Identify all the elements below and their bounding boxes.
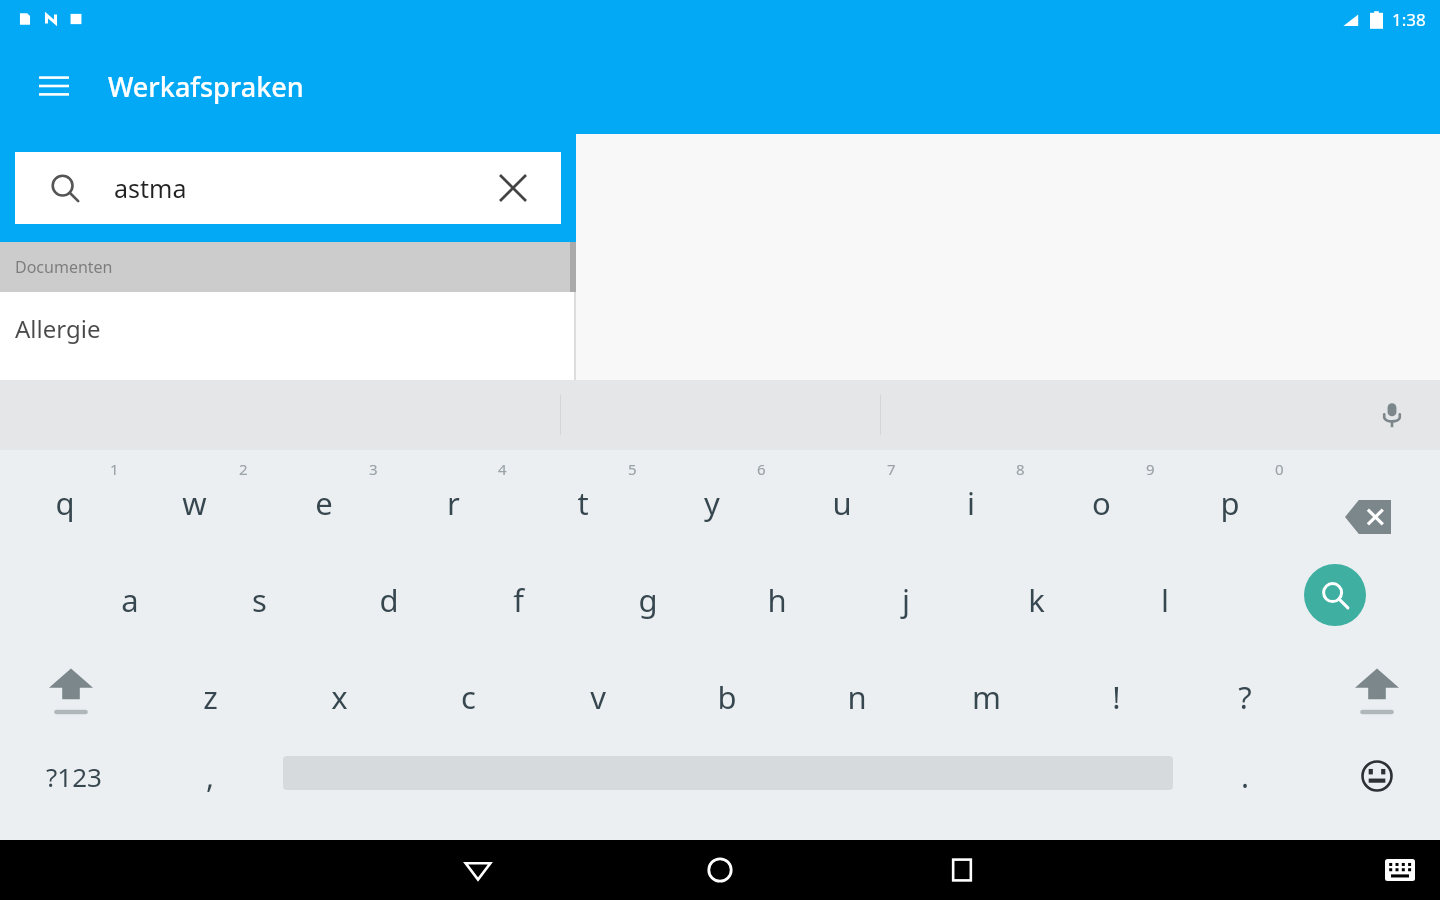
button[interactable]: Search bbox=[1277, 560, 1393, 630]
button[interactable]: Shift bbox=[13, 644, 129, 741]
button[interactable]: h bbox=[719, 547, 835, 644]
staticText: l bbox=[1161, 579, 1169, 621]
staticText: m bbox=[972, 676, 1001, 718]
staticText: 2 bbox=[239, 459, 248, 479]
button[interactable]: Back bbox=[428, 840, 528, 900]
button[interactable]: w bbox=[136, 450, 252, 547]
button[interactable]: f bbox=[460, 547, 576, 644]
staticText: 0 bbox=[1275, 459, 1284, 479]
staticText: , bbox=[206, 756, 215, 797]
staticText: ?123 bbox=[46, 759, 102, 794]
staticText: w bbox=[182, 482, 207, 524]
button[interactable]: Clear search bbox=[489, 164, 537, 212]
button[interactable]: l bbox=[1107, 547, 1223, 644]
button[interactable]: Home bbox=[670, 840, 770, 900]
staticText: 7 bbox=[887, 459, 896, 479]
button[interactable]: Change keyboard bbox=[1360, 840, 1440, 900]
button[interactable]: v bbox=[540, 644, 656, 741]
button[interactable]: Recent apps bbox=[912, 840, 1012, 900]
staticText: 8 bbox=[1016, 459, 1025, 479]
button[interactable]: p bbox=[1172, 450, 1288, 547]
staticText: i bbox=[967, 482, 975, 524]
staticText: 6 bbox=[757, 459, 766, 479]
staticText: v bbox=[590, 676, 606, 718]
button[interactable]: o bbox=[1043, 450, 1159, 547]
staticText: s bbox=[252, 579, 267, 621]
staticText: astma bbox=[114, 171, 187, 205]
button[interactable]: ?123 bbox=[12, 741, 136, 811]
button[interactable]: Open navigation drawer bbox=[26, 58, 82, 114]
staticText: o bbox=[1092, 482, 1111, 524]
staticText: 5 bbox=[628, 459, 637, 479]
button[interactable]: j bbox=[848, 547, 964, 644]
staticText: y bbox=[704, 482, 720, 524]
button[interactable]: Shift bbox=[1319, 644, 1435, 741]
staticText: n bbox=[847, 676, 867, 718]
button[interactable]: Allergie bbox=[0, 292, 576, 364]
staticText: d bbox=[379, 579, 399, 621]
staticText: 4 bbox=[498, 459, 507, 479]
button[interactable]: g bbox=[590, 547, 706, 644]
staticText: 1:38 bbox=[1392, 8, 1426, 31]
button[interactable]: z bbox=[152, 644, 268, 741]
button[interactable]: t bbox=[525, 450, 641, 547]
button[interactable]: a bbox=[72, 547, 188, 644]
button[interactable]: n bbox=[799, 644, 915, 741]
button[interactable]: b bbox=[669, 644, 785, 741]
staticText: j bbox=[902, 579, 910, 621]
staticText: 9 bbox=[1146, 459, 1155, 479]
staticText: z bbox=[203, 676, 218, 718]
button[interactable]: Voice input bbox=[1366, 389, 1418, 441]
staticText: c bbox=[461, 676, 476, 718]
staticText: h bbox=[767, 579, 787, 621]
staticText: r bbox=[447, 482, 460, 524]
button[interactable]: ? bbox=[1187, 644, 1303, 741]
button[interactable]: ! bbox=[1058, 644, 1174, 741]
staticText: . bbox=[1241, 756, 1250, 797]
staticText: f bbox=[513, 579, 524, 621]
staticText: e bbox=[315, 482, 333, 524]
button[interactable]: m bbox=[928, 644, 1044, 741]
button[interactable]: y bbox=[654, 450, 770, 547]
button[interactable]: Emoji bbox=[1319, 741, 1435, 811]
staticText: 3 bbox=[369, 459, 378, 479]
staticText: 1 bbox=[110, 459, 119, 479]
staticText: k bbox=[1028, 579, 1045, 621]
button[interactable]: s bbox=[201, 547, 317, 644]
button[interactable]: k bbox=[978, 547, 1094, 644]
staticText: a bbox=[121, 579, 139, 621]
button[interactable]: i bbox=[913, 450, 1029, 547]
button[interactable]: astma bbox=[15, 152, 561, 224]
button[interactable]: c bbox=[410, 644, 526, 741]
staticText: ? bbox=[1238, 676, 1252, 718]
button[interactable]: . bbox=[1187, 741, 1303, 811]
button[interactable]: , bbox=[152, 741, 268, 811]
staticText: Allergie bbox=[15, 312, 101, 345]
staticText: Werkafspraken bbox=[108, 68, 304, 105]
staticText: b bbox=[717, 676, 737, 718]
button[interactable]: e bbox=[266, 450, 382, 547]
button[interactable]: u bbox=[784, 450, 900, 547]
button[interactable]: d bbox=[331, 547, 447, 644]
staticText: q bbox=[55, 482, 75, 524]
button[interactable]: x bbox=[281, 644, 397, 741]
staticText: t bbox=[577, 482, 589, 524]
staticText: x bbox=[331, 676, 348, 718]
staticText: Documenten bbox=[15, 256, 113, 278]
button[interactable]: Backspace bbox=[1310, 482, 1426, 552]
button[interactable]: r bbox=[395, 450, 511, 547]
staticText: ! bbox=[1112, 676, 1121, 718]
button[interactable]: q bbox=[7, 450, 123, 547]
staticText: g bbox=[638, 579, 658, 621]
staticText: u bbox=[832, 482, 852, 524]
staticText: p bbox=[1220, 482, 1240, 524]
